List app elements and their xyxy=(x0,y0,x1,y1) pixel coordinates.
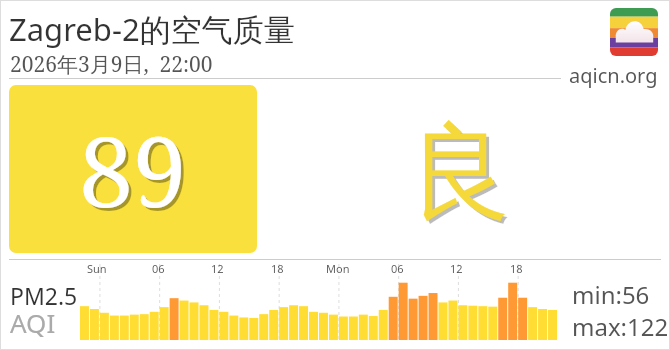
button[interactable]: PM2.5 AQI hourly chart xyxy=(80,262,558,340)
staticText: 12 xyxy=(450,261,463,276)
button[interactable]: aqicn.org logo xyxy=(610,8,658,56)
staticText: aqicn.org xyxy=(569,62,658,89)
staticText: 06 xyxy=(391,261,404,276)
staticText: 89 xyxy=(82,107,190,238)
staticText: Zagreb-2的空气质量 xyxy=(9,8,295,50)
staticText: 12 xyxy=(211,261,224,276)
staticText: 18 xyxy=(510,261,523,276)
staticText: 2026年3月9日, 22:00 xyxy=(10,50,213,79)
staticText: AQI xyxy=(10,305,56,340)
staticText: 良 xyxy=(408,108,512,233)
staticText: PM2.5 xyxy=(10,280,78,311)
staticText: 06 xyxy=(152,261,165,276)
button[interactable]: 89 xyxy=(9,85,257,253)
staticText: Sun xyxy=(87,261,107,276)
staticText: 良 xyxy=(411,111,515,236)
staticText: 89 xyxy=(79,104,187,235)
staticText: 18 xyxy=(271,261,284,276)
staticText: min:56 xyxy=(572,278,650,311)
staticText: Mon xyxy=(326,261,350,276)
staticText: max:122 xyxy=(572,310,669,343)
